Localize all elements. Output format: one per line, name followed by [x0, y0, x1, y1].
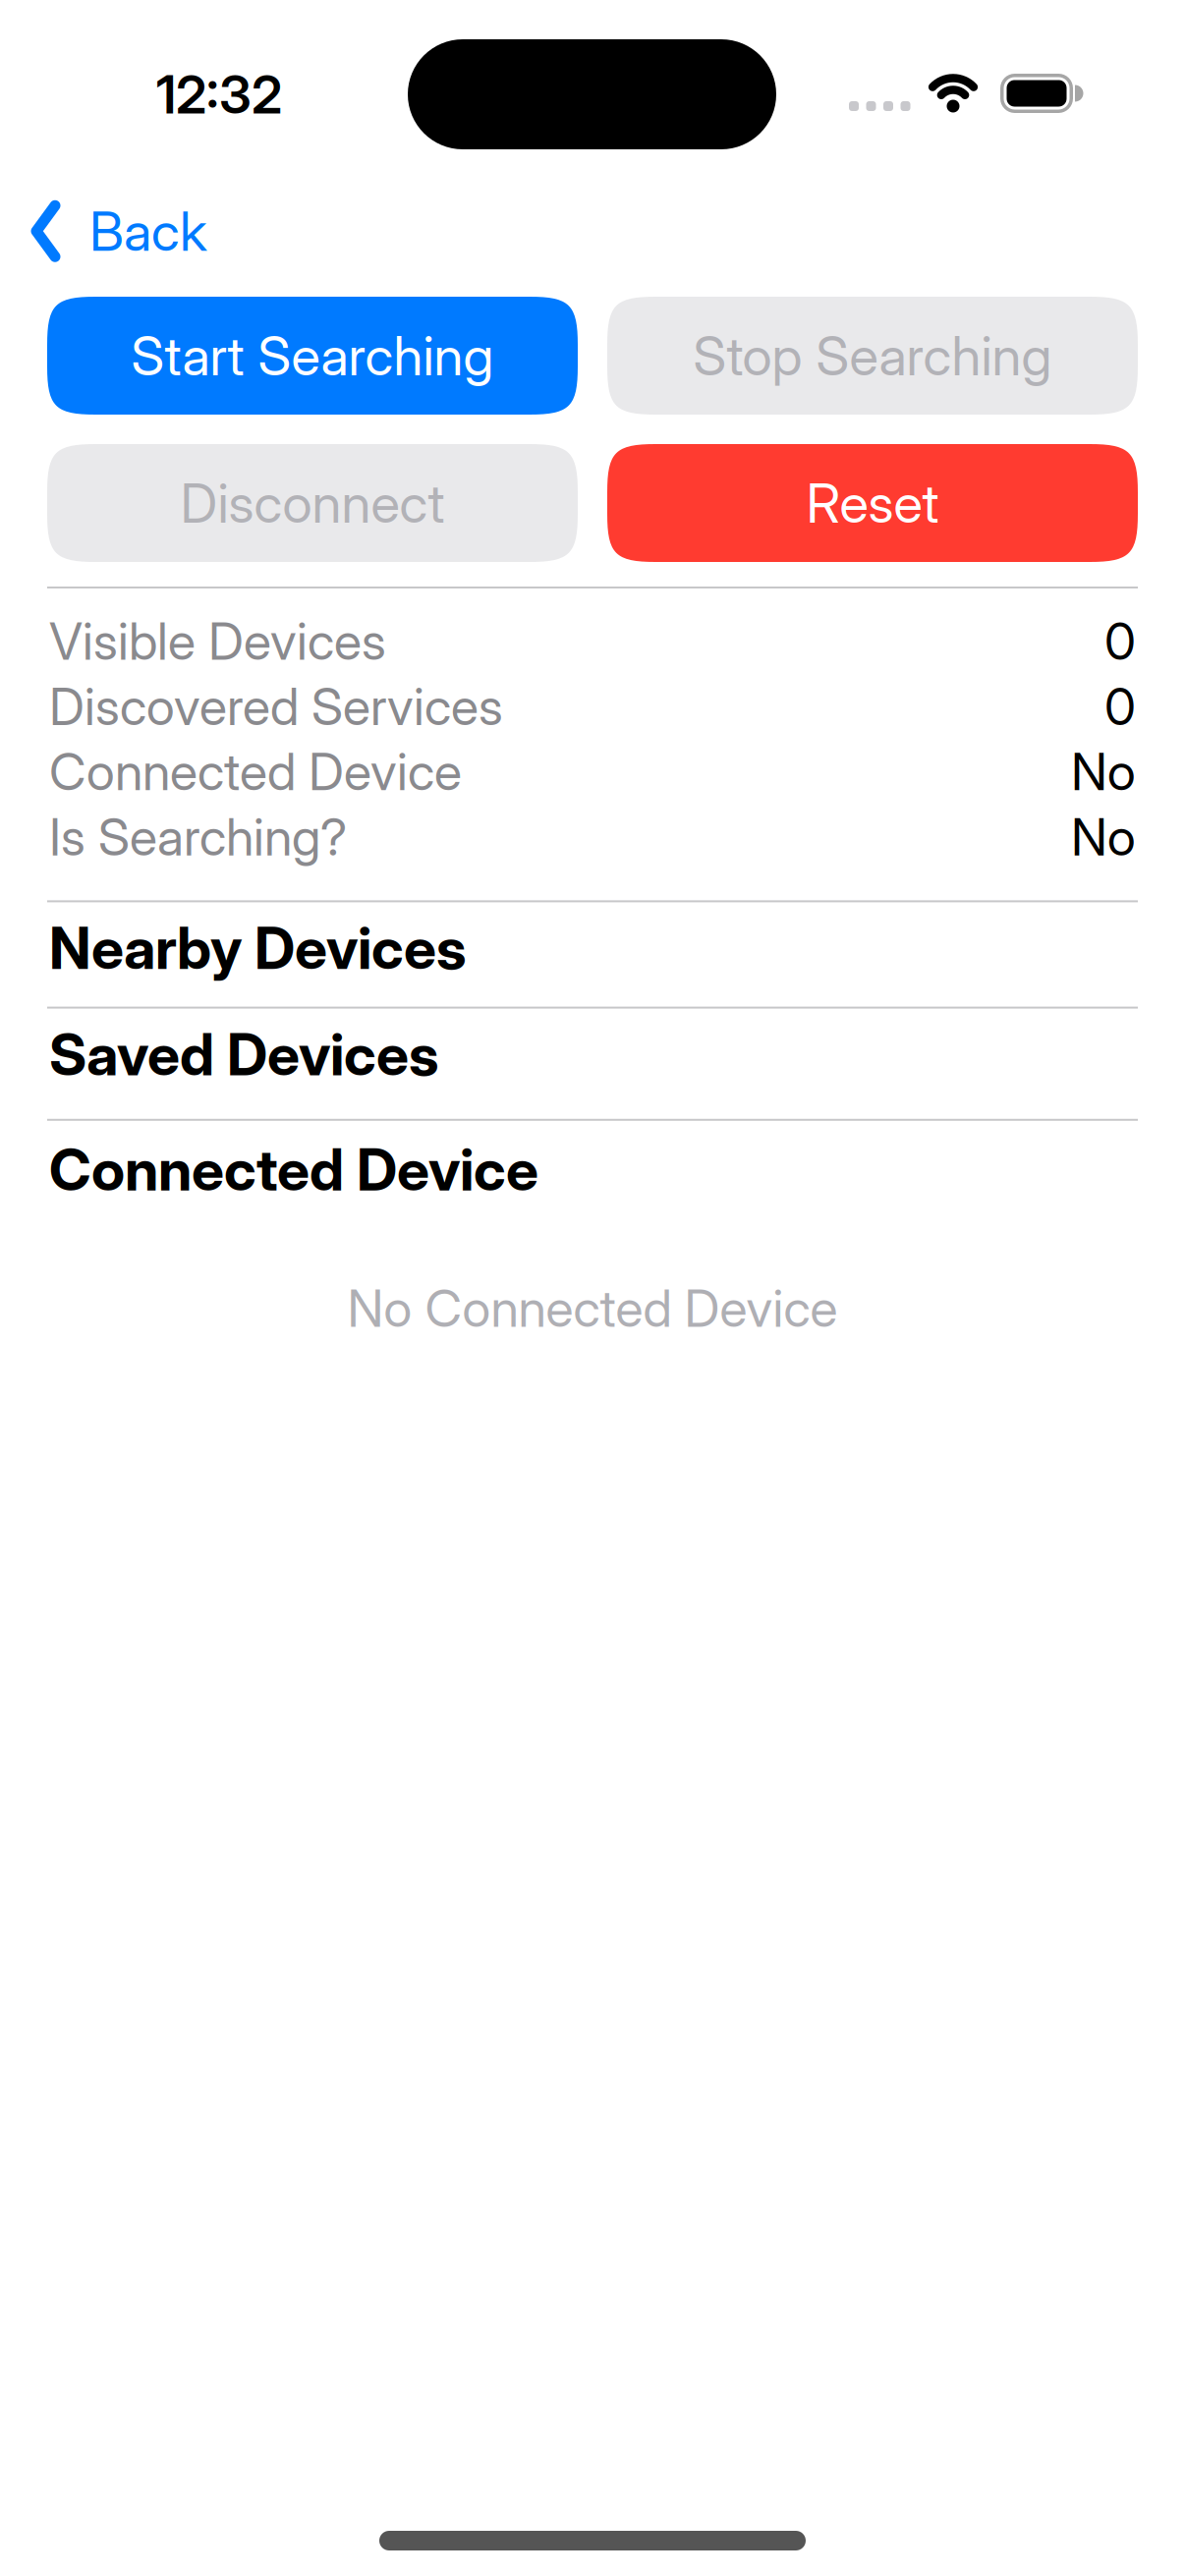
staticText: No Connected Device [347, 1278, 838, 1338]
staticText: Discovered Services [49, 676, 503, 736]
staticText: 12:32 [156, 63, 282, 125]
staticText: Start Searching [131, 324, 494, 387]
button[interactable]: Stop Searching [607, 297, 1138, 415]
button[interactable]: Back [0, 199, 207, 263]
staticText: Back [89, 199, 207, 263]
staticText: Stop Searching [693, 324, 1052, 387]
staticText: Saved Devices [49, 1020, 439, 1088]
staticText: Disconnect [180, 471, 445, 535]
staticText: 0 [1104, 611, 1136, 671]
staticText: Is Searching? [49, 807, 347, 867]
staticText: Connected Device [49, 741, 462, 802]
button[interactable]: Disconnect [47, 444, 578, 562]
staticText: Connected Device [49, 1136, 538, 1204]
staticText: No [1071, 741, 1136, 802]
staticText: Visible Devices [49, 611, 386, 671]
staticText: Nearby Devices [49, 914, 467, 982]
staticText: 0 [1104, 676, 1136, 736]
button[interactable]: Start Searching [47, 297, 578, 415]
button[interactable]: Reset [607, 444, 1138, 562]
staticText: Reset [806, 471, 939, 535]
staticText: No [1071, 807, 1136, 867]
